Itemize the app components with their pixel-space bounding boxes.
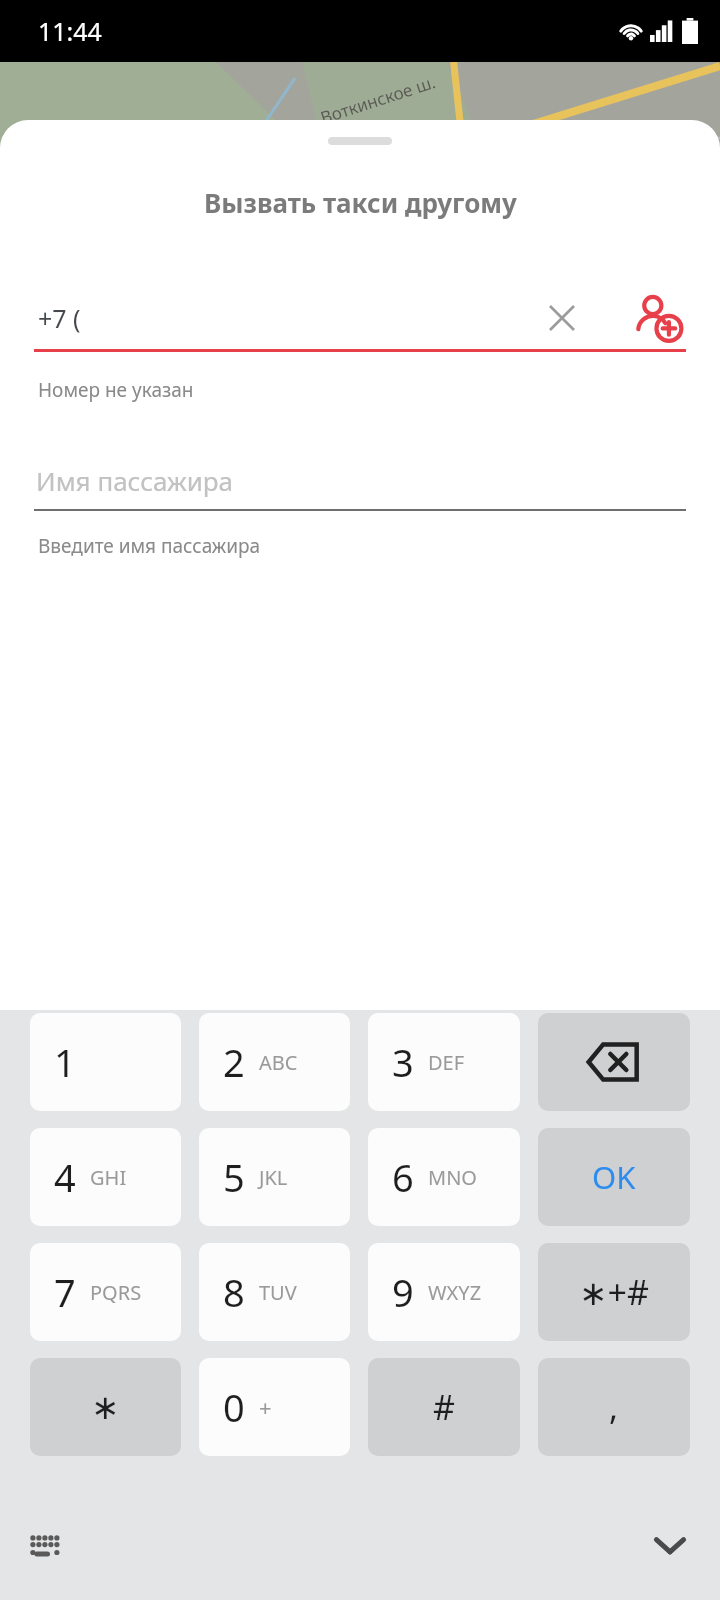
- staticText: ∗: [91, 1387, 120, 1427]
- button[interactable]: ,: [538, 1358, 690, 1456]
- staticText: Имя пассажира: [36, 463, 234, 498]
- staticText: 3: [392, 1036, 414, 1088]
- staticText: JKL: [259, 1164, 288, 1191]
- button[interactable]: ∗+#: [538, 1243, 690, 1341]
- button[interactable]: 1: [30, 1013, 181, 1111]
- button[interactable]: Add contact: [630, 290, 686, 346]
- button[interactable]: #: [368, 1358, 520, 1456]
- staticText: +: [259, 1392, 272, 1422]
- staticText: Введите имя пассажира: [38, 533, 261, 559]
- staticText: 5: [223, 1151, 245, 1203]
- button[interactable]: 7: [30, 1243, 181, 1341]
- staticText: 4: [54, 1151, 76, 1203]
- staticText: ,: [609, 1384, 619, 1430]
- button[interactable]: 5: [199, 1128, 350, 1226]
- button[interactable]: Имя пассажира: [0, 451, 720, 509]
- button[interactable]: Backspace: [538, 1013, 690, 1111]
- staticText: TUV: [259, 1279, 297, 1306]
- staticText: Воткинское ш.: [317, 70, 439, 129]
- staticText: ∗+#: [579, 1269, 649, 1315]
- staticText: GHI: [90, 1164, 127, 1191]
- staticText: Номер не указан: [38, 377, 194, 403]
- button[interactable]: +7 (: [0, 287, 720, 349]
- staticText: 7: [54, 1266, 76, 1318]
- button[interactable]: ∗: [30, 1358, 181, 1456]
- staticText: +7 (: [38, 301, 81, 335]
- button[interactable]: 8: [199, 1243, 350, 1341]
- staticText: MNO: [428, 1164, 477, 1191]
- button[interactable]: 0: [199, 1358, 350, 1456]
- staticText: 2: [223, 1036, 245, 1088]
- staticText: Вызвать такси другому: [204, 185, 517, 220]
- button[interactable]: 3: [368, 1013, 520, 1111]
- staticText: #: [433, 1384, 455, 1430]
- staticText: 6: [392, 1151, 414, 1203]
- button[interactable]: Hide keyboard: [640, 1515, 700, 1575]
- staticText: ABC: [259, 1049, 298, 1076]
- button[interactable]: 2: [199, 1013, 350, 1111]
- button[interactable]: OK: [538, 1128, 690, 1226]
- staticText: PQRS: [90, 1279, 142, 1306]
- staticText: 11:44: [38, 14, 102, 48]
- staticText: 8: [223, 1266, 245, 1318]
- button[interactable]: 4: [30, 1128, 181, 1226]
- button[interactable]: Change keyboard: [16, 1517, 72, 1573]
- staticText: 9: [392, 1266, 414, 1318]
- button[interactable]: Clear: [540, 296, 584, 340]
- staticText: WXYZ: [428, 1279, 482, 1306]
- staticText: DEF: [428, 1049, 465, 1076]
- staticText: 0: [223, 1381, 245, 1433]
- staticText: 1: [54, 1036, 76, 1088]
- button[interactable]: 9: [368, 1243, 520, 1341]
- staticText: OK: [592, 1156, 636, 1198]
- button[interactable]: 6: [368, 1128, 520, 1226]
